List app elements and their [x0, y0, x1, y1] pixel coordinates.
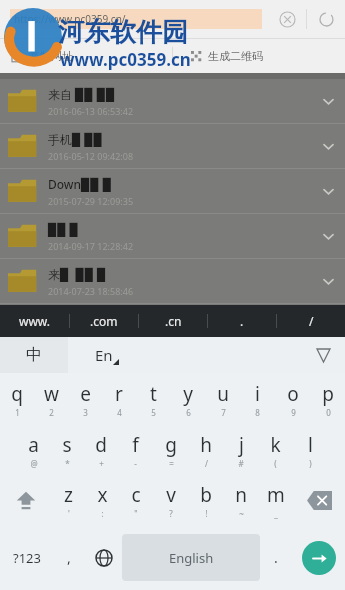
- button[interactable]: 来▉ ▉▉ ▉: [0, 259, 345, 303]
- staticText: Down▉▉ ▉: [48, 176, 112, 192]
- button[interactable]: 复制网址: [12, 39, 172, 73]
- button[interactable]: Down▉▉ ▉: [0, 169, 345, 213]
- staticText: 2014-09-17 12:28:42: [48, 240, 134, 252]
- button[interactable]: e: [68, 373, 102, 425]
- staticText: r: [115, 381, 123, 407]
- staticText: ,: [67, 548, 71, 567]
- staticText: #: [238, 458, 244, 469]
- button[interactable]: t: [136, 373, 170, 425]
- staticText: 5: [151, 407, 156, 418]
- staticText: =: [169, 458, 174, 469]
- button[interactable]: .: [260, 525, 292, 590]
- staticText: :: [101, 508, 104, 519]
- button[interactable]: .com: [70, 305, 138, 337]
- staticText: 6: [186, 407, 191, 418]
- button[interactable]: En: [68, 337, 146, 373]
- staticText: s: [62, 432, 72, 458]
- staticText: h: [200, 432, 212, 458]
- staticText: 2015-07-29 12:09:35: [48, 195, 134, 207]
- button[interactable]: https://www.pc0359.cn/: [10, 8, 262, 30]
- staticText: -: [134, 458, 137, 469]
- button[interactable]: q: [0, 373, 34, 425]
- button[interactable]: Expand: [311, 259, 345, 303]
- button[interactable]: u: [205, 373, 240, 425]
- staticText: _: [274, 508, 278, 519]
- button[interactable]: k: [258, 425, 293, 475]
- staticText: .cn: [165, 313, 182, 329]
- staticText: ?: [169, 508, 173, 519]
- button[interactable]: w: [34, 373, 68, 425]
- button[interactable]: Expand: [311, 214, 345, 258]
- button[interactable]: s: [50, 425, 84, 475]
- button[interactable]: m: [258, 475, 293, 525]
- staticText: !: [205, 508, 208, 519]
- button[interactable]: English: [122, 534, 260, 581]
- button[interactable]: Expand: [311, 124, 345, 168]
- staticText: k: [270, 432, 281, 458]
- button[interactable]: Backspace: [293, 475, 345, 525]
- staticText: www.pc0359.cn: [60, 48, 191, 71]
- button[interactable]: 来自 ▉▉ ▉▉: [0, 79, 345, 123]
- button[interactable]: 生成二维码: [191, 39, 345, 73]
- staticText: 0: [326, 407, 331, 418]
- button[interactable]: n: [223, 475, 258, 525]
- button[interactable]: Expand: [311, 169, 345, 213]
- button[interactable]: j: [223, 425, 258, 475]
- button[interactable]: z: [51, 475, 85, 525]
- button[interactable]: h: [188, 425, 223, 475]
- staticText: a: [28, 432, 39, 458]
- button[interactable]: Refresh: [307, 0, 345, 38]
- button[interactable]: ▉▉ ▉: [0, 214, 345, 258]
- staticText: l: [308, 432, 313, 458]
- staticText: 8: [255, 407, 260, 418]
- button[interactable]: Hide keyboard: [301, 337, 345, 373]
- button[interactable]: l: [293, 425, 328, 475]
- button[interactable]: 手机▉ ▉▉: [0, 124, 345, 168]
- staticText: t: [150, 381, 157, 407]
- button[interactable]: ?123: [0, 525, 53, 590]
- staticText: 4: [117, 407, 122, 418]
- staticText: 来自 ▉▉ ▉▉: [48, 86, 116, 102]
- staticText: En: [95, 345, 113, 365]
- button[interactable]: d: [84, 425, 118, 475]
- button[interactable]: y: [170, 373, 205, 425]
- staticText: 2016-06-13 06:53:42: [48, 105, 134, 117]
- button[interactable]: c: [119, 475, 153, 525]
- staticText: 2: [49, 407, 54, 418]
- button[interactable]: Enter: [302, 541, 336, 575]
- staticText: 生成二维码: [208, 49, 263, 63]
- staticText: (: [274, 458, 277, 469]
- button[interactable]: Clear: [268, 0, 306, 38]
- button[interactable]: ,: [53, 525, 85, 590]
- button[interactable]: www.: [0, 305, 69, 337]
- button[interactable]: i: [240, 373, 275, 425]
- button[interactable]: b: [188, 475, 223, 525]
- staticText: 9: [291, 407, 296, 418]
- staticText: x: [97, 482, 108, 508]
- button[interactable]: Expand: [311, 79, 345, 123]
- button[interactable]: .cn: [139, 305, 207, 337]
- button[interactable]: Shift: [0, 475, 51, 525]
- staticText: d: [95, 432, 107, 458]
- button[interactable]: a: [16, 425, 50, 475]
- button[interactable]: o: [275, 373, 310, 425]
- button[interactable]: r: [102, 373, 136, 425]
- button[interactable]: x: [85, 475, 119, 525]
- staticText: 2014-07-23 18:58:46: [48, 285, 134, 297]
- staticText: q: [11, 381, 23, 407]
- button[interactable]: Change language: [85, 525, 122, 590]
- button[interactable]: .: [208, 305, 276, 337]
- button[interactable]: g: [153, 425, 188, 475]
- staticText: i: [255, 381, 260, 407]
- button[interactable]: p: [310, 373, 345, 425]
- button[interactable]: 中: [0, 337, 68, 373]
- button[interactable]: v: [153, 475, 188, 525]
- staticText: ": [134, 508, 138, 519]
- button[interactable]: /: [277, 305, 345, 337]
- button[interactable]: f: [118, 425, 153, 475]
- staticText: .com: [90, 313, 118, 329]
- staticText: *: [65, 458, 70, 469]
- staticText: 中: [26, 345, 42, 365]
- staticText: @: [30, 458, 38, 469]
